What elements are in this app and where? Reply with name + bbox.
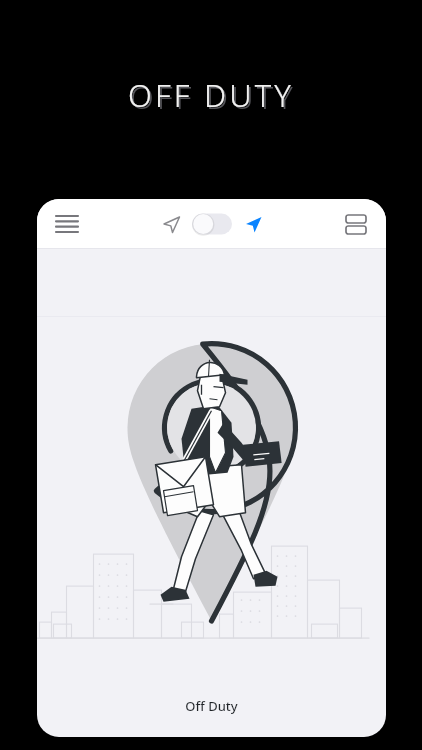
button[interactable]: Duty toggle (192, 211, 232, 237)
staticText: OFF DUTY (128, 74, 295, 116)
button[interactable]: Menu (47, 204, 87, 244)
button[interactable]: Auto location (238, 209, 268, 239)
staticText: OFF DUTY (130, 76, 297, 118)
button[interactable]: Layout (336, 204, 376, 244)
staticText: Off Duty (37, 697, 386, 715)
button[interactable]: Manual location (156, 209, 186, 239)
